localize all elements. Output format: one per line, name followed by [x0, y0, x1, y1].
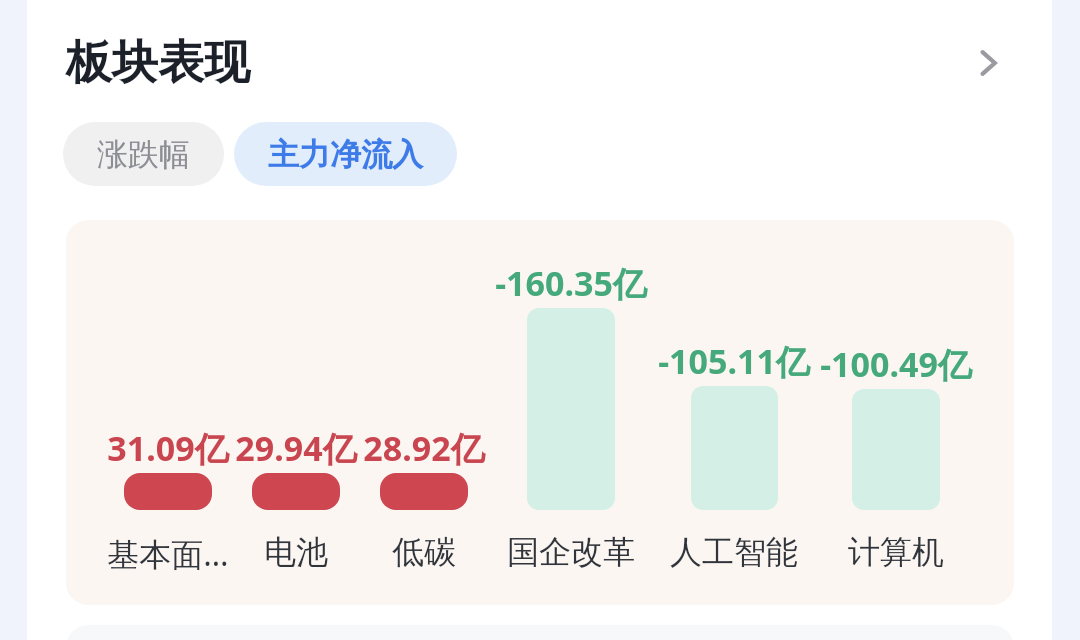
staticText: 基本面… — [107, 532, 229, 576]
staticText: 涨跌幅 — [97, 135, 190, 174]
staticText: -105.11亿 — [658, 338, 810, 384]
staticText: -160.35亿 — [495, 260, 647, 306]
staticText: 人工智能 — [670, 532, 798, 572]
staticText: 28.92亿 — [363, 425, 485, 471]
staticText: 31.09亿 — [107, 425, 229, 471]
button[interactable]: 31.09亿 — [66, 220, 1014, 605]
staticText: 计算机 — [848, 532, 944, 572]
staticText: 板块表现 — [66, 34, 250, 92]
staticText: 国企改革 — [507, 532, 635, 572]
button[interactable]: 主力净流入 — [234, 122, 457, 186]
other: 查看更多 — [960, 35, 1016, 91]
staticText: 主力净流入 — [268, 135, 423, 174]
staticText: -100.49亿 — [820, 341, 972, 387]
button[interactable]: 板块表现 — [66, 22, 1016, 104]
staticText: 低碳 — [392, 532, 456, 572]
staticText: 29.94亿 — [235, 425, 357, 471]
button[interactable]: 涨跌幅 — [63, 122, 224, 186]
staticText: 电池 — [264, 532, 328, 572]
